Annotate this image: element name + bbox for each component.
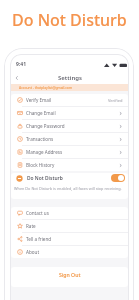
staticText: Sign Out <box>59 271 81 278</box>
staticText: When Do Not Disturb is enabled, all faxe… <box>14 186 122 191</box>
button[interactable]: About <box>11 246 128 258</box>
staticText: Settings <box>58 74 82 82</box>
staticText: Block History <box>26 162 55 168</box>
button[interactable]: Back <box>10 71 24 84</box>
staticText: Rate <box>26 223 36 229</box>
staticText: Change Email <box>26 110 56 116</box>
button[interactable]: Tell a friend <box>11 233 128 245</box>
staticText: About <box>26 249 40 255</box>
staticText: Transactions <box>26 136 54 142</box>
button[interactable]: Change Password <box>11 120 128 132</box>
staticText: Do Not Disturb <box>27 175 63 182</box>
staticText: 9:41 <box>16 61 26 68</box>
button[interactable]: Manage Address <box>11 146 128 158</box>
staticText: Verify Email <box>26 97 52 103</box>
button[interactable]: Do Not Disturb toggle <box>111 174 125 182</box>
button[interactable]: Block History <box>11 159 128 171</box>
staticText: Change Password <box>26 123 65 129</box>
button[interactable]: Contact us <box>11 207 128 219</box>
button[interactable]: Change Email <box>11 107 128 119</box>
staticText: Account - thatplaylist@gmail.com <box>19 85 73 90</box>
staticText: Do Not Disturb <box>12 9 127 31</box>
button[interactable]: Rate <box>11 220 128 232</box>
staticText: Contact us <box>26 210 49 216</box>
button[interactable]: Transactions <box>11 133 128 145</box>
button[interactable]: Verify Email <box>11 94 128 106</box>
staticText: Manage Address <box>26 149 63 155</box>
staticText: Verified <box>108 98 123 103</box>
staticText: Tell a friend <box>26 236 52 242</box>
button[interactable]: Sign Out <box>11 267 128 287</box>
